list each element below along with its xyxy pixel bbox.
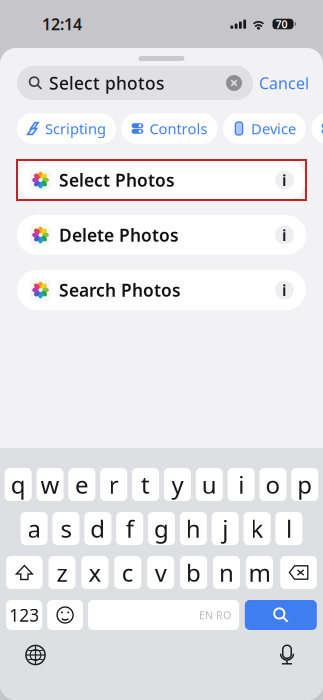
staticText: i <box>282 169 287 191</box>
button[interactable]: b <box>180 556 207 589</box>
staticText: g <box>154 513 169 544</box>
staticText: y <box>171 469 183 500</box>
button[interactable]: w <box>36 468 63 501</box>
button[interactable]: Search Photos <box>17 270 306 310</box>
staticText: t <box>141 469 150 500</box>
staticText: Delete Photos <box>59 223 179 246</box>
staticText: v <box>155 557 167 588</box>
staticText: Controls <box>149 119 207 138</box>
button[interactable]: Delete <box>280 556 317 589</box>
button[interactable]: M <box>311 113 323 144</box>
staticText: m <box>248 557 270 588</box>
button[interactable]: q <box>5 468 32 501</box>
staticText: a <box>28 513 41 544</box>
button[interactable]: Cancel <box>259 72 309 94</box>
button[interactable]: Device <box>223 113 306 144</box>
staticText: c <box>122 557 134 588</box>
button[interactable]: d <box>84 512 111 545</box>
button[interactable]: a <box>21 512 48 545</box>
button[interactable]: Delete Photos <box>17 215 306 255</box>
staticText: r <box>109 469 119 500</box>
staticText: d <box>90 513 105 544</box>
button[interactable]: p <box>291 468 318 501</box>
staticText: w <box>40 469 59 500</box>
staticText: 70 <box>275 17 287 31</box>
button[interactable]: i <box>228 468 255 501</box>
staticText: b <box>186 557 201 588</box>
button[interactable]: Search <box>245 600 317 630</box>
button[interactable]: u <box>196 468 223 501</box>
button[interactable]: z <box>48 556 75 589</box>
staticText: x <box>88 557 101 588</box>
button[interactable]: h <box>180 512 207 545</box>
button[interactable]: n <box>213 556 240 589</box>
button[interactable]: t <box>132 468 159 501</box>
staticText: f <box>126 513 134 544</box>
button[interactable]: m <box>246 556 273 589</box>
staticText: s <box>60 513 71 544</box>
staticText: 123 <box>9 603 39 626</box>
staticText: Device <box>251 119 296 138</box>
button[interactable]: s <box>52 512 79 545</box>
staticText: o <box>265 469 280 500</box>
button[interactable]: Select Photos <box>17 160 306 200</box>
staticText: Select photos <box>49 71 164 94</box>
button[interactable]: Dictation <box>276 644 298 666</box>
staticText: i <box>282 224 287 246</box>
staticText: l <box>286 513 292 544</box>
button[interactable]: j <box>212 512 239 545</box>
staticText: e <box>75 469 89 500</box>
staticText: h <box>186 513 201 544</box>
button[interactable]: o <box>259 468 286 501</box>
staticText: 12:14 <box>42 13 82 35</box>
button[interactable]: g <box>148 512 175 545</box>
staticText: j <box>222 513 228 544</box>
button[interactable]: Scripting <box>17 113 116 144</box>
staticText: p <box>297 469 312 500</box>
staticText: q <box>11 469 26 500</box>
button[interactable]: r <box>100 468 127 501</box>
button[interactable]: Controls <box>121 113 217 144</box>
staticText: Cancel <box>259 72 309 94</box>
staticText: Select Photos <box>59 168 175 191</box>
button[interactable]: Emoji <box>47 600 83 630</box>
button[interactable]: Space <box>88 600 239 630</box>
button[interactable]: Clear text <box>222 71 246 95</box>
button[interactable]: y <box>164 468 191 501</box>
staticText: n <box>219 557 234 588</box>
staticText: i <box>282 279 287 301</box>
staticText: k <box>250 513 263 544</box>
button[interactable]: l <box>275 512 302 545</box>
button[interactable]: k <box>243 512 270 545</box>
button[interactable]: x <box>81 556 108 589</box>
staticText: EN RO <box>199 608 231 622</box>
button[interactable]: Shift <box>6 556 43 589</box>
button[interactable]: f <box>116 512 143 545</box>
button[interactable]: c <box>114 556 141 589</box>
staticText: Search Photos <box>59 278 181 301</box>
button[interactable]: v <box>147 556 174 589</box>
staticText: i <box>238 469 244 500</box>
staticText: z <box>56 557 67 588</box>
staticText: Scripting <box>45 119 106 138</box>
button[interactable]: e <box>68 468 95 501</box>
button[interactable]: Switch keyboard <box>25 644 46 665</box>
button[interactable]: 123 <box>6 600 42 630</box>
staticText: u <box>202 469 217 500</box>
